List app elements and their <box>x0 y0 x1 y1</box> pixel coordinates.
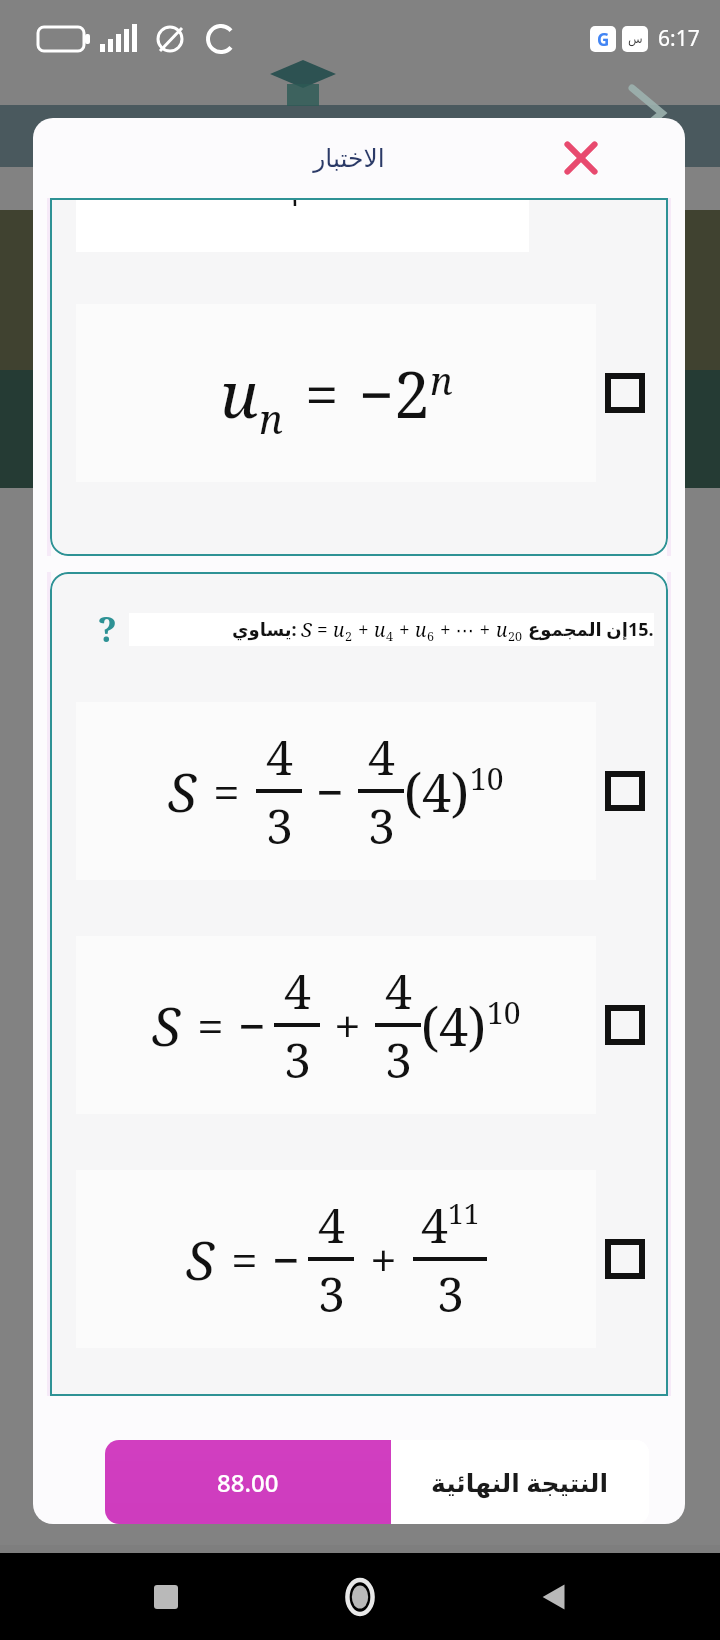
staticText: n <box>430 354 453 406</box>
staticText: S <box>186 1224 215 1295</box>
staticText: S <box>301 616 312 643</box>
button[interactable]: u <box>76 304 642 482</box>
staticText: u <box>374 617 386 643</box>
staticText: 4 <box>421 1192 448 1257</box>
staticText: 3 <box>318 1261 345 1326</box>
staticText: 2 <box>345 628 353 645</box>
staticText: = <box>305 353 339 435</box>
staticText: u <box>220 350 259 437</box>
staticText: − <box>359 353 394 435</box>
button[interactable]: Close <box>555 132 607 184</box>
staticText: 10 <box>487 992 521 1033</box>
staticText: u <box>333 617 345 643</box>
staticText: 20 <box>508 628 523 645</box>
staticText: u <box>415 617 427 643</box>
staticText: 6:17 <box>658 24 700 53</box>
staticText: 11 <box>448 1194 480 1232</box>
staticText: 3 <box>284 1027 311 1092</box>
staticText: 6 <box>427 628 435 645</box>
staticText: + <box>370 1227 397 1292</box>
staticText: 88.00 <box>217 1466 279 1499</box>
staticText: S <box>168 756 197 827</box>
staticText: = <box>213 759 240 824</box>
staticText: 3 <box>266 793 293 858</box>
staticText: 4 <box>266 724 293 789</box>
staticText: يساوي: <box>232 617 297 642</box>
staticText: + <box>394 617 415 643</box>
staticText: 10 <box>470 758 504 799</box>
staticText: 3 <box>368 793 395 858</box>
button[interactable]: Back <box>526 1569 582 1625</box>
staticText: 4 <box>284 958 311 1023</box>
staticText: − <box>316 759 344 824</box>
staticText: = <box>231 1227 258 1292</box>
staticText: (4) <box>421 990 487 1061</box>
staticText: النتيجة النهائية <box>431 1465 609 1499</box>
button[interactable]: S <box>76 1170 642 1348</box>
staticText: + <box>334 993 361 1058</box>
staticText: + ⋯ + <box>435 617 496 643</box>
button[interactable]: S <box>76 702 642 880</box>
staticText: ١٠ <box>286 198 319 213</box>
staticText: 4 <box>368 724 395 789</box>
staticText: S <box>152 990 181 1061</box>
button[interactable]: 88.00 <box>105 1440 649 1524</box>
button[interactable]: Home <box>332 1569 388 1625</box>
staticText: ? <box>98 606 117 652</box>
staticText: + <box>353 617 374 643</box>
staticText: = <box>312 617 333 643</box>
staticText: إن المجموع <box>528 617 628 642</box>
button[interactable]: S <box>76 936 642 1114</box>
staticText: G <box>597 28 610 51</box>
staticText: u <box>496 617 508 643</box>
staticText: n <box>259 391 283 445</box>
staticText: 2 <box>394 350 430 437</box>
staticText: − <box>272 1227 300 1292</box>
staticText: − <box>238 993 266 1058</box>
button[interactable]: Recent apps <box>138 1569 194 1625</box>
staticText: 15. <box>628 617 654 642</box>
staticText: 4 <box>318 1192 345 1257</box>
staticText: (4) <box>404 756 470 827</box>
staticText: س <box>628 32 643 46</box>
staticText: الاختبار <box>313 144 385 173</box>
staticText: 4 <box>385 958 412 1023</box>
staticText: = <box>197 993 224 1058</box>
staticText: 4 <box>386 628 394 645</box>
staticText: 3 <box>385 1027 412 1092</box>
staticText: 3 <box>437 1261 464 1326</box>
